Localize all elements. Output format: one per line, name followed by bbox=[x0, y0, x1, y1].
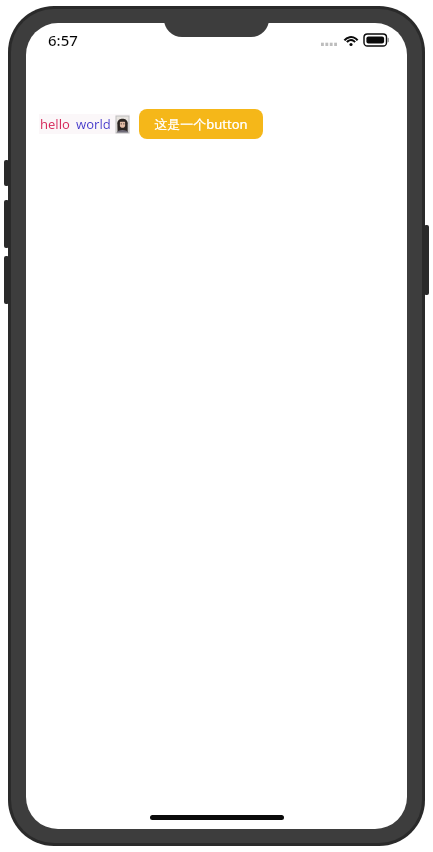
button[interactable]: 这是一个button bbox=[139, 109, 263, 139]
staticText: 这是一个button bbox=[154, 115, 248, 133]
staticText: world bbox=[76, 115, 111, 133]
staticText: 6:57 bbox=[48, 30, 78, 50]
other: Portrait photo bbox=[116, 116, 129, 133]
staticText: hello bbox=[40, 115, 70, 133]
